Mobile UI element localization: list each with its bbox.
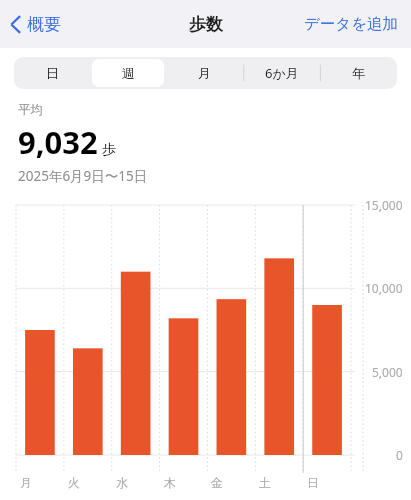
staticText: 月: [198, 65, 211, 81]
staticText: 日: [46, 65, 59, 81]
button[interactable]: 週: [92, 59, 164, 87]
staticText: データを追加: [304, 14, 399, 34]
staticText: 火: [68, 475, 80, 490]
staticText: 週: [122, 65, 135, 81]
button[interactable]: データを追加: [292, 6, 411, 42]
staticText: 日: [307, 475, 319, 490]
staticText: 木: [164, 475, 176, 490]
staticText: 年: [352, 65, 365, 81]
staticText: 土: [259, 475, 271, 490]
staticText: 5,000: [372, 364, 403, 380]
staticText: 金: [211, 475, 223, 490]
staticText: 月: [20, 475, 32, 490]
staticText: 歩: [102, 141, 116, 159]
staticText: 0: [396, 447, 403, 463]
button[interactable]: 概要: [0, 8, 73, 41]
staticText: 6か月: [265, 64, 299, 82]
staticText: 平均: [18, 102, 43, 118]
staticText: 10,000: [365, 280, 403, 296]
staticText: 15,000: [365, 197, 403, 213]
button[interactable]: 年: [322, 59, 395, 87]
button[interactable]: 月: [168, 59, 241, 87]
staticText: 水: [116, 475, 128, 490]
button[interactable]: 日: [16, 59, 88, 87]
staticText: 9,032: [18, 121, 98, 163]
staticText: 2025年6月9日〜15日: [18, 167, 148, 185]
staticText: 歩数: [189, 14, 223, 35]
staticText: 概要: [27, 14, 61, 35]
button[interactable]: 6か月: [245, 59, 318, 87]
